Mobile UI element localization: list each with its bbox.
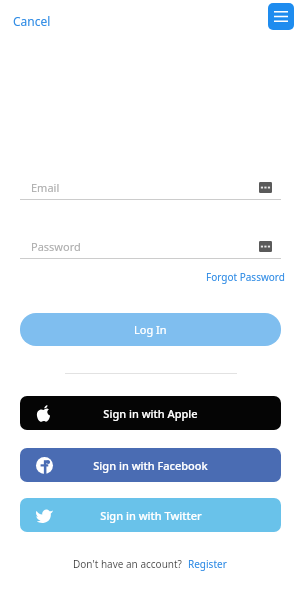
- staticText: Don't have an account?: [73, 557, 182, 571]
- staticText: Register: [188, 557, 227, 571]
- button[interactable]: Cancel: [8, 10, 56, 32]
- button[interactable]: Log In: [20, 313, 281, 346]
- staticText: Sign in with Apple: [103, 406, 198, 421]
- staticText: Password: [31, 239, 81, 254]
- staticText: Sign in with Facebook: [93, 458, 208, 473]
- button[interactable]: Sign in with Twitter: [20, 498, 281, 532]
- staticText: Sign in with Twitter: [100, 508, 202, 523]
- staticText: Email: [31, 180, 60, 195]
- button[interactable]: Sign in with Facebook: [20, 448, 281, 482]
- staticText: Log In: [134, 322, 167, 337]
- button[interactable]: Forgot Password: [201, 268, 290, 286]
- button[interactable]: Sign in with Apple: [20, 396, 281, 430]
- button[interactable]: Menu: [268, 3, 294, 30]
- button[interactable]: Password: [20, 233, 281, 259]
- staticText: Forgot Password: [206, 270, 285, 284]
- button[interactable]: Email: [20, 174, 281, 200]
- button[interactable]: Register: [186, 556, 229, 572]
- staticText: Cancel: [13, 13, 51, 29]
